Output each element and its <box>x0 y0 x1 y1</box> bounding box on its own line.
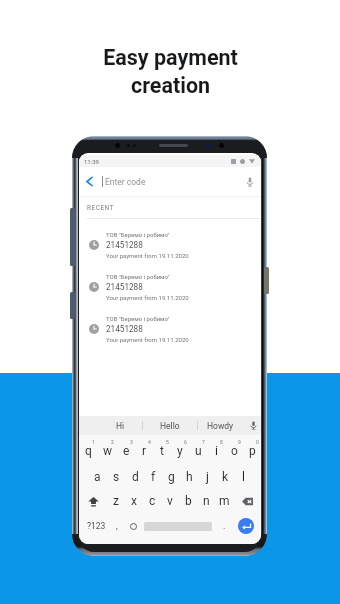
staticText: 2 <box>111 439 114 445</box>
staticText: Easy payment creation <box>103 45 238 98</box>
button[interactable]: 7 <box>189 439 207 463</box>
staticText: x <box>131 494 137 508</box>
staticText: 5 <box>166 439 169 445</box>
staticText: p <box>249 444 256 458</box>
button[interactable]: h <box>180 465 198 489</box>
button[interactable]: 9 <box>225 439 243 463</box>
staticText: k <box>222 470 229 484</box>
button[interactable]: g <box>162 465 180 489</box>
staticText: v <box>167 494 173 508</box>
staticText: ТОВ "Беремо і робимо" <box>106 315 170 322</box>
button[interactable]: 4 <box>135 439 153 463</box>
staticText: y <box>177 444 183 458</box>
button[interactable]: Voice search <box>239 167 261 196</box>
staticText: ?123 <box>87 521 106 531</box>
staticText: 7 <box>202 439 205 445</box>
staticText: n <box>203 494 210 508</box>
staticText: ТОВ "Беремо і робимо" <box>106 231 170 238</box>
staticText: l <box>242 470 245 484</box>
button[interactable]: Hello <box>145 416 195 435</box>
staticText: , <box>116 521 118 532</box>
button[interactable]: 2 <box>98 439 117 463</box>
button[interactable]: 0 <box>243 439 261 463</box>
button[interactable]: Space <box>141 514 215 538</box>
button[interactable]: k <box>216 465 234 489</box>
button[interactable]: l <box>234 465 252 489</box>
button[interactable]: Voice typing <box>245 416 261 435</box>
button[interactable]: d <box>126 465 144 489</box>
staticText: Howdy <box>207 421 234 431</box>
staticText: 6 <box>184 439 187 445</box>
button[interactable]: Backspace <box>233 489 261 513</box>
button[interactable]: Hi <box>95 416 145 435</box>
staticText: 8 <box>220 439 223 445</box>
button[interactable]: s <box>107 465 126 489</box>
staticText: 9 <box>238 439 241 445</box>
staticText: RECENT <box>87 204 115 212</box>
staticText: h <box>186 470 193 484</box>
button[interactable]: Back <box>79 167 99 196</box>
button[interactable]: c <box>143 489 161 513</box>
staticText: f <box>151 470 156 484</box>
button[interactable]: n <box>197 489 215 513</box>
staticText: 21451288 <box>106 240 143 250</box>
button[interactable]: z <box>107 489 125 513</box>
button[interactable]: 8 <box>207 439 225 463</box>
staticText: w <box>103 444 113 458</box>
button[interactable]: b <box>179 489 197 513</box>
staticText: z <box>113 494 119 508</box>
staticText: ТОВ "Беремо і робимо" <box>106 273 170 280</box>
button[interactable]: ТОВ "Беремо і робимо" <box>79 308 261 350</box>
staticText: b <box>185 494 192 508</box>
staticText: Hi <box>116 421 125 431</box>
button[interactable]: 6 <box>171 439 189 463</box>
staticText: d <box>132 470 139 484</box>
staticText: 21451288 <box>106 324 143 334</box>
button[interactable]: , <box>109 514 125 538</box>
staticText: 1 <box>92 439 95 445</box>
staticText: c <box>149 494 156 508</box>
staticText: 0 <box>256 439 259 445</box>
staticText: 3 <box>130 439 133 445</box>
button[interactable]: ТОВ "Беремо і робимо" <box>79 224 261 266</box>
button[interactable]: Howdy <box>195 416 245 435</box>
staticText: a <box>94 470 101 484</box>
button[interactable]: j <box>198 465 216 489</box>
staticText: u <box>195 444 202 458</box>
staticText: . <box>223 521 226 532</box>
button[interactable]: Enter <box>231 514 260 538</box>
button[interactable]: v <box>161 489 179 513</box>
button[interactable]: 3 <box>117 439 135 463</box>
button[interactable]: x <box>125 489 143 513</box>
staticText: Enter code <box>105 177 146 187</box>
button[interactable]: a <box>88 465 107 489</box>
button[interactable]: 5 <box>153 439 171 463</box>
staticText: Your payment from 19.11.2020 <box>106 336 189 343</box>
staticText: i <box>215 444 218 458</box>
staticText: s <box>113 470 120 484</box>
staticText: 21451288 <box>106 282 143 292</box>
staticText: Hello <box>160 421 180 431</box>
staticText: 4 <box>148 439 151 445</box>
button[interactable]: Emoji <box>125 514 141 538</box>
staticText: m <box>219 494 230 508</box>
button[interactable]: ?123 <box>83 514 109 538</box>
staticText: Your payment from 19.11.2020 <box>106 252 189 259</box>
staticText: q <box>85 444 92 458</box>
staticText: 11:39 <box>84 158 99 165</box>
button[interactable]: ТОВ "Беремо і робимо" <box>79 266 261 308</box>
staticText: e <box>123 444 130 458</box>
staticText: r <box>142 444 147 458</box>
staticText: g <box>168 470 175 484</box>
button[interactable]: m <box>215 489 233 513</box>
button[interactable]: Shift <box>79 489 107 513</box>
staticText: Your payment from 19.11.2020 <box>106 294 189 301</box>
staticText: t <box>160 444 164 458</box>
staticText: j <box>206 470 209 484</box>
staticText: o <box>231 444 238 458</box>
button[interactable]: f <box>144 465 162 489</box>
button[interactable]: . <box>217 514 231 538</box>
button[interactable]: 1 <box>79 439 98 463</box>
